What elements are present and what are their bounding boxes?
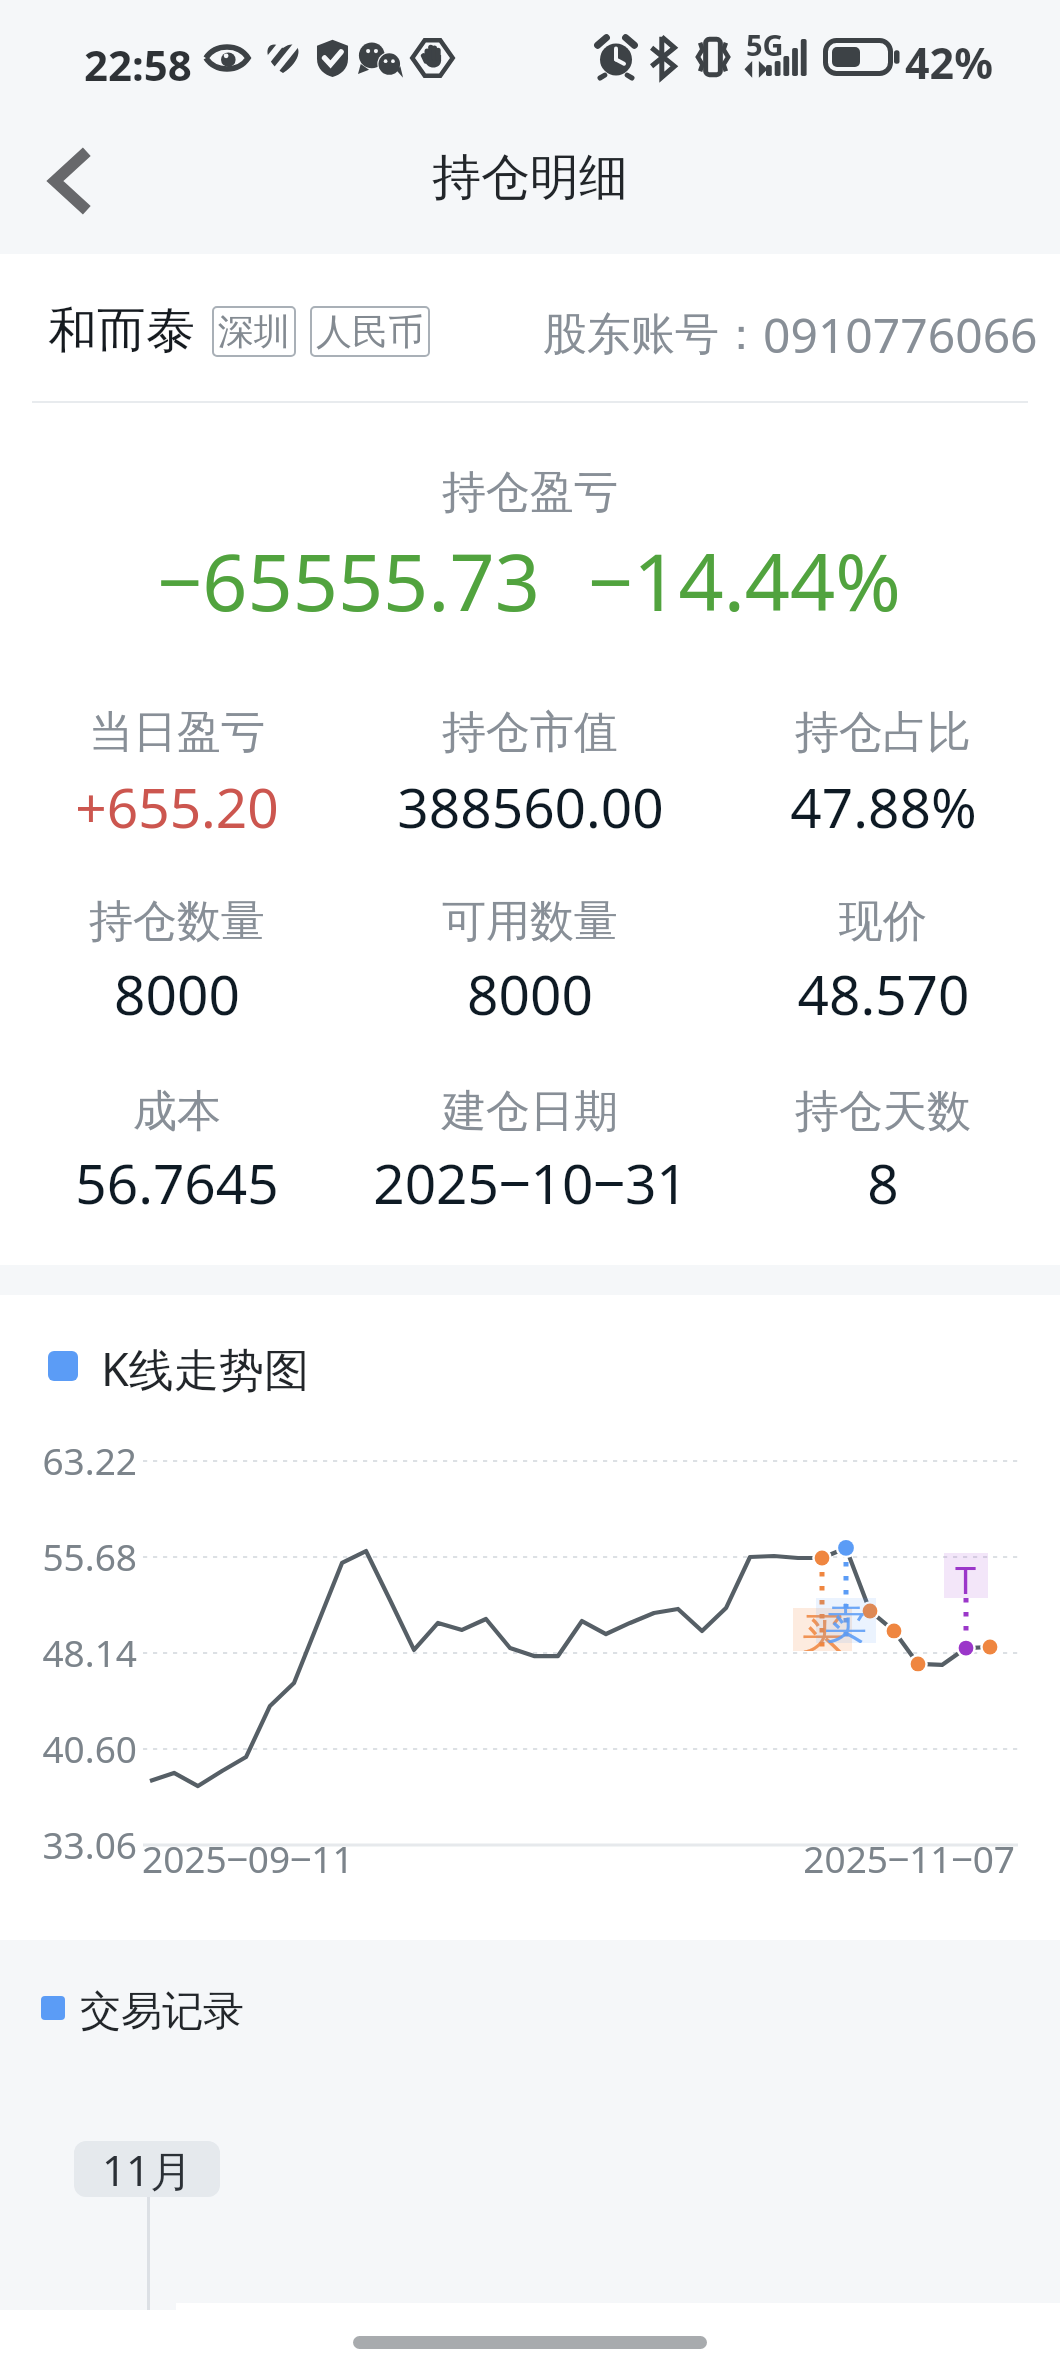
staticText: 2025‒10‒31 xyxy=(373,1145,688,1220)
staticText: 人民币 xyxy=(316,309,424,354)
staticText: 33.06 xyxy=(42,1819,137,1869)
staticText: 持仓天数 xyxy=(795,1084,971,1139)
staticText: T xyxy=(955,1553,977,1598)
staticText: −14.44% xyxy=(588,527,901,635)
staticText: 持仓市值 xyxy=(442,705,618,760)
button[interactable]: Back xyxy=(20,131,120,231)
staticText: 40.60 xyxy=(42,1723,137,1773)
staticText: K线走势图 xyxy=(101,1338,309,1399)
staticText: 交易记录 xyxy=(80,1986,244,2038)
button[interactable]: K线走势图 xyxy=(48,1332,309,1400)
staticText: 建仓日期 xyxy=(442,1084,618,1139)
button[interactable]: 和而泰 持仓 xyxy=(0,254,1060,402)
staticText: 388560.00 xyxy=(397,769,664,844)
staticText: 成本 xyxy=(133,1084,221,1139)
staticText: 持仓数量 xyxy=(89,894,265,949)
staticText: 持仓明细 xyxy=(432,147,628,209)
staticText: 当日盈亏 xyxy=(89,705,265,760)
button[interactable]: 交易记录 xyxy=(41,1974,244,2042)
staticText: 买 xyxy=(802,1608,844,1651)
staticText: 5G xyxy=(746,25,784,64)
staticText: −65555.73 xyxy=(157,527,540,635)
staticText: 22:58 xyxy=(84,36,192,93)
staticText: 8 xyxy=(867,1145,899,1220)
staticText: 11月 xyxy=(102,2141,193,2197)
staticText: +655.20 xyxy=(75,769,279,844)
staticText: 42% xyxy=(905,33,993,92)
staticText: 和而泰 xyxy=(48,300,195,362)
staticText: 卖 xyxy=(825,1598,867,1643)
staticText: 48.570 xyxy=(797,956,970,1031)
staticText: 深圳 xyxy=(218,309,290,354)
staticText: 持仓占比 xyxy=(795,705,971,760)
staticText: 55.68 xyxy=(42,1531,137,1581)
button[interactable]: 11月 xyxy=(74,2141,220,2197)
staticText: 0910776066 xyxy=(763,302,1038,367)
staticText: 可用数量 xyxy=(442,894,618,949)
staticText: 47.88% xyxy=(790,769,977,844)
staticText: 持仓盈亏 xyxy=(442,465,618,520)
staticText: 现价 xyxy=(839,894,927,949)
staticText: 2025‒11‒07 xyxy=(803,1833,1015,1883)
staticText: 63.22 xyxy=(42,1435,137,1485)
staticText: 56.7645 xyxy=(75,1145,279,1220)
staticText: 48.14 xyxy=(42,1627,137,1677)
staticText: 8000 xyxy=(114,956,240,1031)
staticText: 2025‒09‒11 xyxy=(142,1833,354,1883)
staticText: 股东账号： xyxy=(543,307,763,362)
staticText: 8000 xyxy=(467,956,593,1031)
